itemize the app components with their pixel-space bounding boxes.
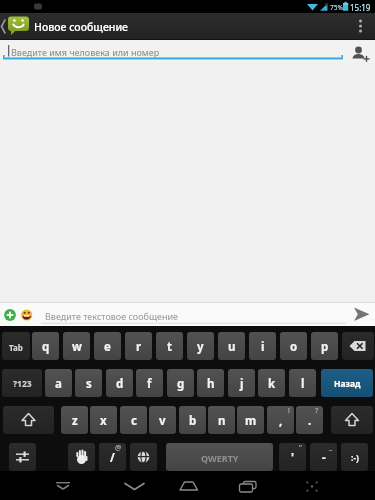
staticText: z (72, 413, 78, 429)
staticText: Введите имя человека или номер (11, 46, 160, 58)
staticText: QWERTY (201, 452, 239, 464)
button[interactable]: d (106, 369, 133, 397)
button[interactable] (345, 302, 375, 326)
button[interactable]: :-) (341, 443, 368, 471)
staticText: q (42, 339, 50, 355)
staticText: r (136, 339, 142, 355)
staticText: m (245, 413, 257, 429)
button[interactable]: m (237, 406, 264, 434)
button[interactable] (342, 332, 374, 360)
button[interactable]: k (258, 369, 285, 397)
button[interactable] (130, 443, 157, 471)
staticText: Назад (334, 378, 361, 390)
button[interactable]: . (296, 406, 323, 434)
staticText: ! (288, 406, 290, 416)
staticText: v (159, 413, 166, 429)
staticText: s (86, 376, 92, 392)
button[interactable]: v (149, 406, 176, 434)
button[interactable]: o (280, 332, 307, 360)
button[interactable] (3, 406, 54, 434)
button[interactable] (19, 307, 35, 323)
staticText: g (177, 376, 185, 392)
button[interactable] (230, 471, 266, 500)
staticText: n (218, 413, 226, 429)
button[interactable]: y (187, 332, 214, 360)
staticText: e (104, 339, 111, 355)
staticText: ?123 (13, 378, 32, 390)
button[interactable] (2, 307, 18, 323)
button[interactable]: i (249, 332, 276, 360)
staticText: . (308, 413, 312, 429)
button[interactable]: p (311, 332, 338, 360)
button[interactable]: / (99, 443, 126, 471)
staticText: d (116, 376, 124, 392)
button[interactable]: Введите имя человека или номер (0, 40, 375, 63)
button[interactable] (0, 13, 135, 40)
staticText: , (279, 413, 283, 429)
staticText: x (100, 413, 107, 429)
staticText: o (290, 339, 298, 355)
staticText: c (131, 413, 137, 429)
staticText: 75% (330, 3, 343, 12)
staticText: b (189, 413, 197, 429)
staticText: t (167, 339, 172, 355)
staticText: - (322, 450, 326, 466)
button[interactable] (331, 406, 373, 434)
staticText: j (240, 376, 244, 392)
button[interactable]: c (120, 406, 147, 434)
button[interactable]: r (125, 332, 152, 360)
button[interactable]: Назад (321, 369, 373, 397)
button[interactable]: , (267, 406, 294, 434)
button[interactable]: h (197, 369, 224, 397)
staticText: Tab (9, 342, 23, 353)
staticText: Новое сообщение (34, 20, 128, 34)
button[interactable]: j (228, 369, 255, 397)
button[interactable] (116, 471, 152, 500)
button[interactable]: ?123 (2, 369, 42, 397)
button[interactable]: n (208, 406, 235, 434)
button[interactable] (348, 40, 375, 63)
staticText: w (72, 339, 82, 355)
button[interactable]: QWERTY (166, 443, 273, 471)
staticText: u (228, 339, 236, 355)
staticText: :-) (351, 452, 359, 464)
staticText: Введите текстовое сообщение (45, 310, 179, 322)
button[interactable]: q (32, 332, 59, 360)
staticText: p (321, 339, 329, 355)
button[interactable]: Tab (2, 332, 30, 360)
button[interactable]: s (75, 369, 102, 397)
staticText: i (261, 339, 265, 355)
button[interactable]: t (156, 332, 183, 360)
staticText: " (299, 443, 302, 453)
button[interactable]: - (310, 443, 337, 471)
staticText: ' (291, 450, 295, 466)
button[interactable] (9, 443, 36, 471)
button[interactable]: l (289, 369, 316, 397)
staticText: 15:19 (350, 2, 371, 13)
button[interactable]: ' (279, 443, 306, 471)
button[interactable]: a (45, 369, 72, 397)
button[interactable] (170, 471, 206, 500)
staticText: l (301, 376, 305, 392)
staticText: @ (115, 443, 122, 453)
staticText: h (207, 376, 215, 392)
staticText: k (268, 376, 276, 392)
button[interactable]: g (167, 369, 194, 397)
staticText: a (55, 376, 62, 392)
button[interactable]: z (61, 406, 88, 434)
button[interactable]: f (136, 369, 163, 397)
staticText: y (197, 339, 204, 355)
staticText: f (147, 376, 152, 392)
staticText: ? (315, 406, 319, 416)
button[interactable]: b (179, 406, 206, 434)
button[interactable] (45, 471, 81, 500)
button[interactable] (350, 13, 375, 40)
button[interactable] (68, 443, 95, 471)
button[interactable]: u (218, 332, 245, 360)
staticText: _ (329, 443, 333, 453)
button[interactable]: x (90, 406, 117, 434)
button[interactable]: e (94, 332, 121, 360)
staticText: / (110, 450, 115, 466)
button[interactable]: w (63, 332, 90, 360)
